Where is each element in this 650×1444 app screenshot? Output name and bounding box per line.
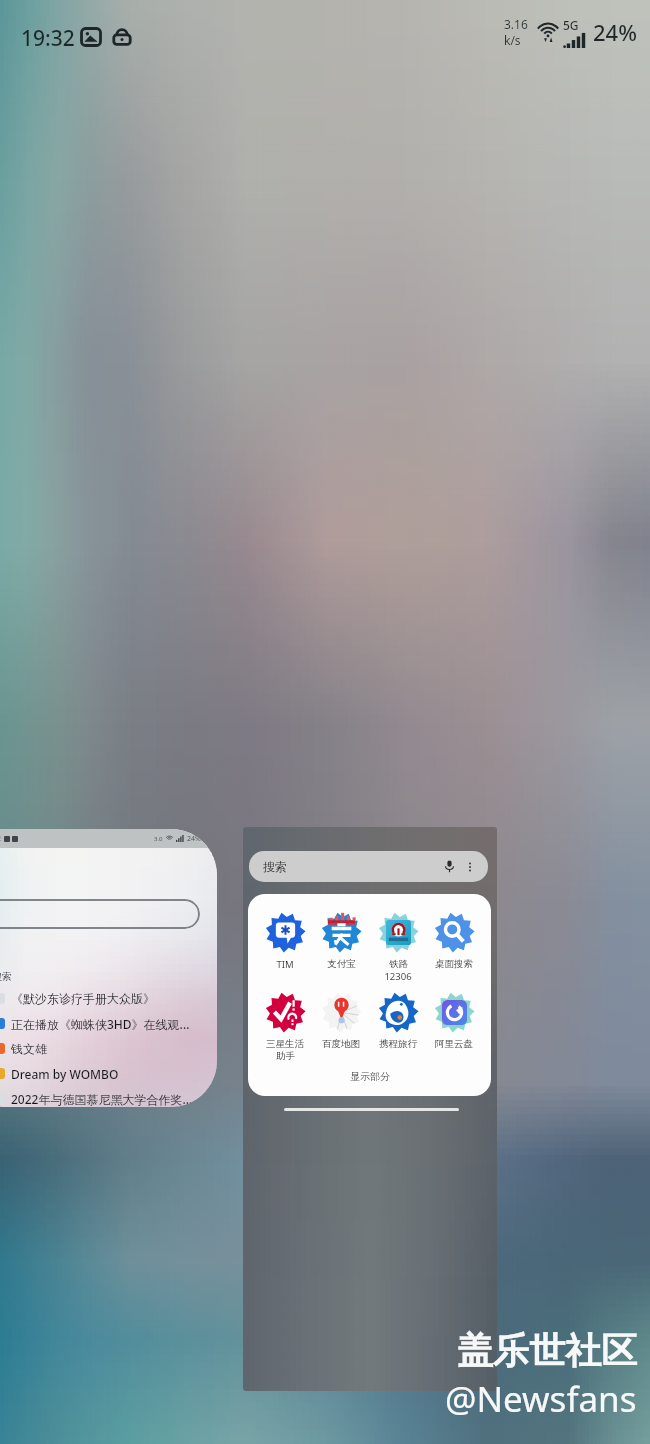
staticText: @Newsfans [445, 1375, 637, 1423]
staticText: 2022年与德国慕尼黑大学合作奖... [11, 1091, 193, 1107]
other: Locked [112, 26, 132, 46]
staticText: 钱文雄 [11, 1041, 47, 1056]
staticText: 3.0 [154, 835, 163, 843]
staticText: 正在播放《蜘蛛侠3HD》在线观... [11, 1016, 190, 1032]
staticText: 19:32 [0, 834, 1, 844]
button[interactable]: Search [0, 899, 200, 929]
staticText: 三星生活 [266, 1038, 304, 1050]
staticText: 百度地图 [322, 1038, 360, 1050]
staticText: 热门搜索 [0, 970, 12, 983]
staticText: Dream by WOMBO [11, 1066, 119, 1082]
staticText: 盖乐世社区 [457, 1328, 637, 1373]
staticText: 铁路 [389, 958, 408, 970]
button[interactable]: 搜索 [249, 851, 488, 882]
staticText: 桌面搜索 [435, 958, 473, 970]
staticText: 《默沙东诊疗手册大众版》 [11, 991, 155, 1006]
staticText: 19:32 [21, 24, 75, 53]
button[interactable]: Dream by WOMBO [0, 1061, 217, 1086]
button[interactable]: 搜索 [243, 827, 497, 1391]
other: More options [463, 860, 477, 874]
button[interactable]: 携程旅行 [371, 992, 425, 1050]
button[interactable]: 桌面搜索 [427, 912, 481, 970]
button[interactable]: 2022年与德国慕尼黑大学合作奖... [0, 1086, 217, 1107]
button[interactable]: 三星生活 [258, 992, 312, 1062]
button[interactable]: 百度地图 [314, 992, 368, 1050]
button[interactable]: 《默沙东诊疗手册大众版》 [0, 986, 217, 1011]
staticText: 12306 [384, 970, 412, 983]
other: Screenshot [81, 27, 101, 47]
staticText: TIM [276, 958, 294, 971]
staticText: 搜索 [263, 859, 287, 874]
button[interactable]: 阿里云盘 [427, 992, 481, 1050]
staticText: 助手 [276, 1050, 295, 1062]
button[interactable]: 支付宝 [314, 912, 368, 970]
button[interactable]: TIM [258, 912, 312, 971]
staticText: 3.16 [504, 16, 528, 32]
staticText: 携程旅行 [379, 1038, 417, 1050]
other: Wi-Fi [534, 18, 562, 46]
button[interactable]: 铁路 [371, 912, 425, 983]
staticText: k/s [504, 32, 521, 48]
staticText: 24% [187, 834, 201, 844]
button[interactable]: 显示部分 [350, 1070, 390, 1083]
staticText: 5G [563, 17, 579, 33]
staticText: 24% [593, 17, 637, 47]
other: Voice search [442, 859, 457, 874]
button[interactable]: 正在播放《蜘蛛侠3HD》在线观... [0, 1011, 217, 1036]
staticText: 支付宝 [327, 958, 356, 970]
button[interactable]: 19:32 [0, 829, 217, 1107]
button[interactable]: 钱文雄 [0, 1036, 217, 1061]
staticText: 阿里云盘 [435, 1038, 473, 1050]
